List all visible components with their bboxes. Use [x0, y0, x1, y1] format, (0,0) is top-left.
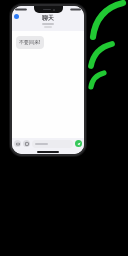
button[interactable]: Gallery — [23, 140, 30, 147]
button[interactable]: Camera — [14, 140, 21, 147]
button[interactable]: Send — [75, 140, 82, 147]
button[interactable]: 不要回来! — [16, 36, 44, 49]
button[interactable] — [32, 140, 73, 148]
staticText: 聊天 — [28, 14, 68, 22]
button[interactable]: Back — [14, 14, 19, 19]
staticText: 不要回来! — [19, 39, 41, 46]
